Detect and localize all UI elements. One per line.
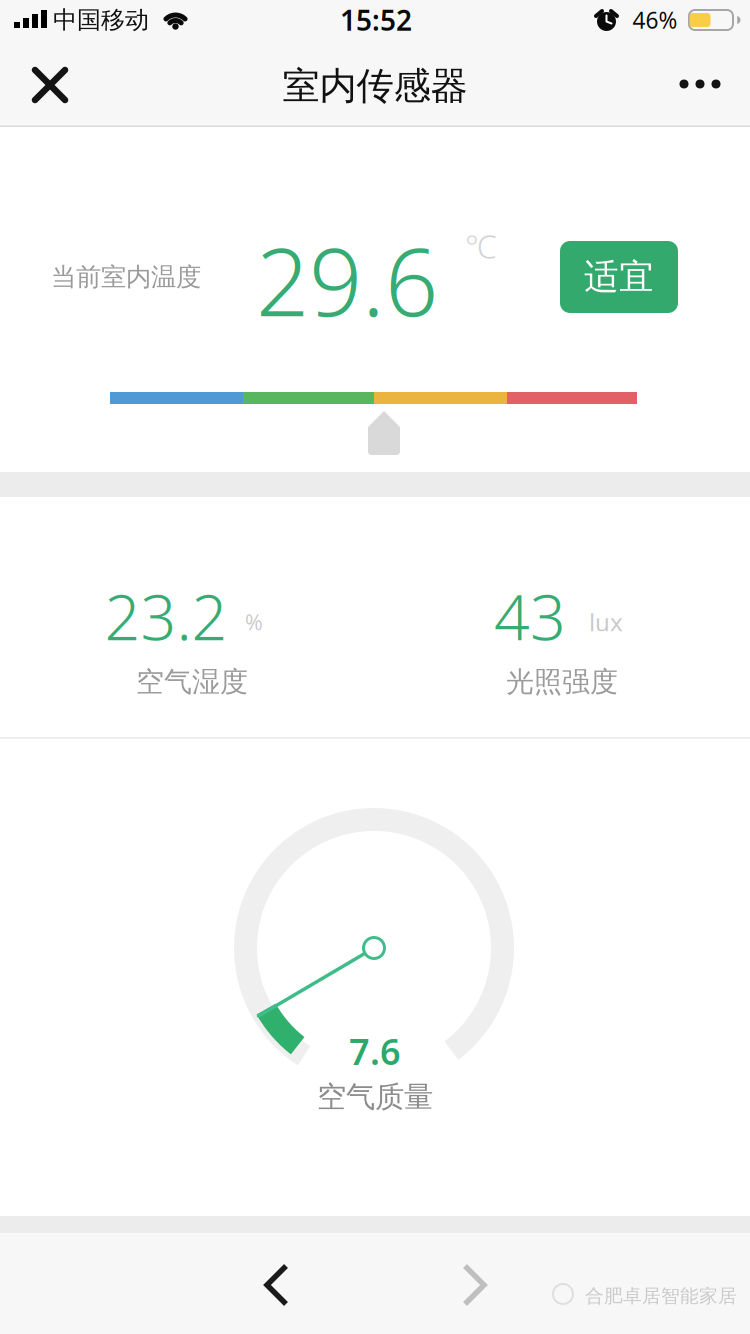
staticText: 7.6 bbox=[349, 1027, 401, 1075]
staticText: 适宜 bbox=[584, 256, 654, 298]
staticText: 29.6 bbox=[256, 218, 438, 342]
staticText: 当前室内温度 bbox=[51, 261, 201, 292]
staticText: 43 bbox=[494, 574, 566, 658]
staticText: 46% bbox=[632, 5, 677, 35]
staticText: % bbox=[245, 608, 263, 636]
button[interactable]: More bbox=[676, 64, 724, 104]
staticText: lux bbox=[589, 606, 623, 638]
staticText: ℃ bbox=[465, 225, 497, 267]
button[interactable]: Back bbox=[257, 1261, 297, 1309]
staticText: 合肥卓居智能家居 bbox=[585, 1284, 737, 1307]
staticText: 空气湿度 bbox=[136, 665, 248, 699]
staticText: 15:52 bbox=[340, 1, 412, 39]
staticText: 中国移动 bbox=[53, 5, 149, 35]
staticText: 空气质量 bbox=[317, 1079, 433, 1115]
staticText: 23.2 bbox=[104, 574, 227, 658]
button[interactable]: Forward bbox=[454, 1261, 494, 1309]
button[interactable]: Close bbox=[30, 65, 70, 105]
button[interactable]: 适宜 bbox=[560, 241, 678, 313]
staticText: 室内传感器 bbox=[282, 63, 467, 109]
staticText: 光照强度 bbox=[506, 665, 618, 699]
